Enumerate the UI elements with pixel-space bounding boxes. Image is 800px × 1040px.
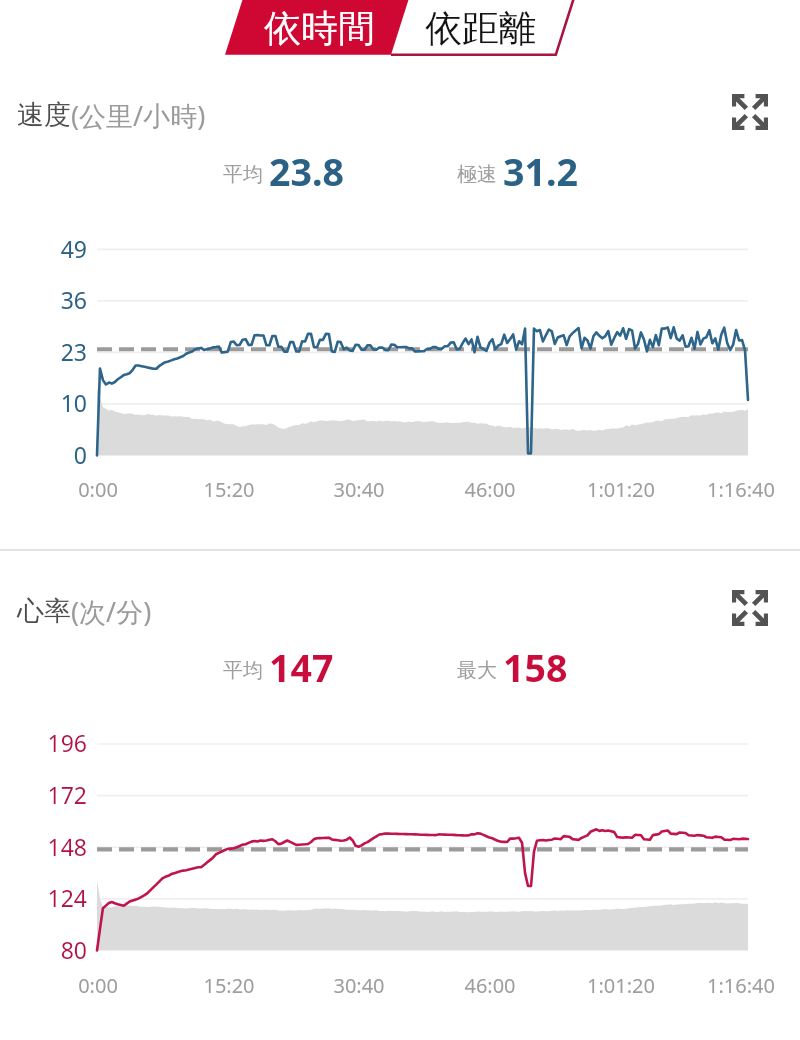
button[interactable]: 依距離 xyxy=(390,0,570,56)
staticText: 1:01:20 xyxy=(551,476,691,503)
staticText: 23 xyxy=(0,336,87,367)
staticText: 心率 xyxy=(17,594,71,628)
button[interactable]: 速度 xyxy=(17,96,206,134)
staticText: (公里/小時) xyxy=(71,97,206,134)
staticText: 196 xyxy=(0,727,87,758)
staticText: 極速 xyxy=(457,162,497,187)
staticText: 172 xyxy=(0,779,87,810)
staticText: 1:16:40 xyxy=(671,972,800,999)
staticText: 1:01:20 xyxy=(551,972,691,999)
staticText: 10 xyxy=(0,387,87,418)
staticText: 0:00 xyxy=(28,972,168,999)
button[interactable]: 依時間 xyxy=(227,0,411,56)
button[interactable]: Expand heart rate chart xyxy=(726,584,774,632)
staticText: 158 xyxy=(503,642,568,693)
staticText: 0:00 xyxy=(28,476,168,503)
staticText: 147 xyxy=(269,642,334,693)
staticText: 1:16:40 xyxy=(671,476,800,503)
staticText: 30:40 xyxy=(289,972,429,999)
staticText: 15:20 xyxy=(159,972,299,999)
button[interactable]: 心率 xyxy=(17,592,152,630)
staticText: 148 xyxy=(0,831,87,862)
staticText: 依時間 xyxy=(264,5,375,52)
staticText: 最大 xyxy=(457,658,497,683)
staticText: 平均 xyxy=(223,658,263,683)
button[interactable]: Expand speed chart xyxy=(726,88,774,136)
staticText: (次/分) xyxy=(71,593,152,630)
staticText: 31.2 xyxy=(503,146,578,197)
staticText: 平均 xyxy=(223,162,263,187)
staticText: 23.8 xyxy=(269,146,344,197)
staticText: 46:00 xyxy=(420,476,560,503)
staticText: 46:00 xyxy=(420,972,560,999)
staticText: 速度 xyxy=(17,98,71,132)
staticText: 依距離 xyxy=(425,5,536,52)
staticText: 124 xyxy=(0,882,87,913)
staticText: 30:40 xyxy=(289,476,429,503)
staticText: 15:20 xyxy=(159,476,299,503)
staticText: 36 xyxy=(0,284,87,315)
staticText: 80 xyxy=(0,934,87,965)
staticText: 0 xyxy=(0,439,87,470)
staticText: 49 xyxy=(0,233,87,264)
